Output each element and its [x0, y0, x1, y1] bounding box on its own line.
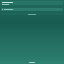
button[interactable]: Status — [1, 8, 63, 11]
button[interactable] — [1, 13, 63, 15]
button[interactable]: Action — [0, 61, 64, 64]
button[interactable] — [1, 1, 63, 5]
